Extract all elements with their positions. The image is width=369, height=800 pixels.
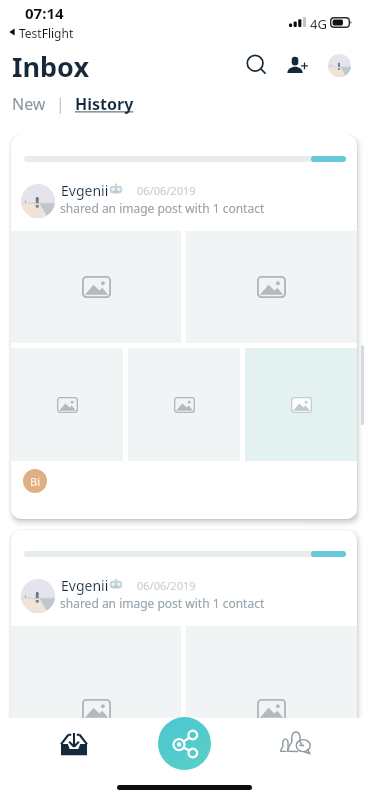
staticText: shared an image post with 1 contact [60, 200, 265, 216]
button[interactable]: Bi [23, 469, 47, 493]
button[interactable]: Profile [328, 54, 351, 77]
button[interactable]: Evgenii [11, 530, 357, 718]
staticText: 06/06/2019 [137, 183, 196, 198]
staticText: History [75, 93, 134, 115]
staticText: | [56, 93, 65, 115]
staticText: TestFlight [19, 25, 74, 41]
staticText: Bi [30, 474, 40, 489]
staticText: 07:14 [25, 3, 64, 23]
staticText: Evgenii [61, 576, 109, 595]
staticText: shared an image post with 1 contact [60, 595, 265, 611]
staticText: 06/06/2019 [137, 578, 196, 593]
button[interactable]: Evgenii [11, 135, 357, 519]
button[interactable]: Search [240, 49, 271, 80]
button[interactable]: Inbox [53, 723, 94, 764]
staticText: New [12, 93, 46, 115]
staticText: 4G [310, 15, 327, 33]
staticText: Inbox [12, 48, 90, 85]
button[interactable]: New [8, 90, 50, 118]
staticText: Evgenii [61, 181, 109, 200]
button[interactable]: History [71, 90, 138, 118]
button[interactable]: Contacts [275, 721, 316, 762]
button[interactable]: Share [158, 717, 211, 770]
button[interactable]: Add contact [281, 49, 312, 80]
